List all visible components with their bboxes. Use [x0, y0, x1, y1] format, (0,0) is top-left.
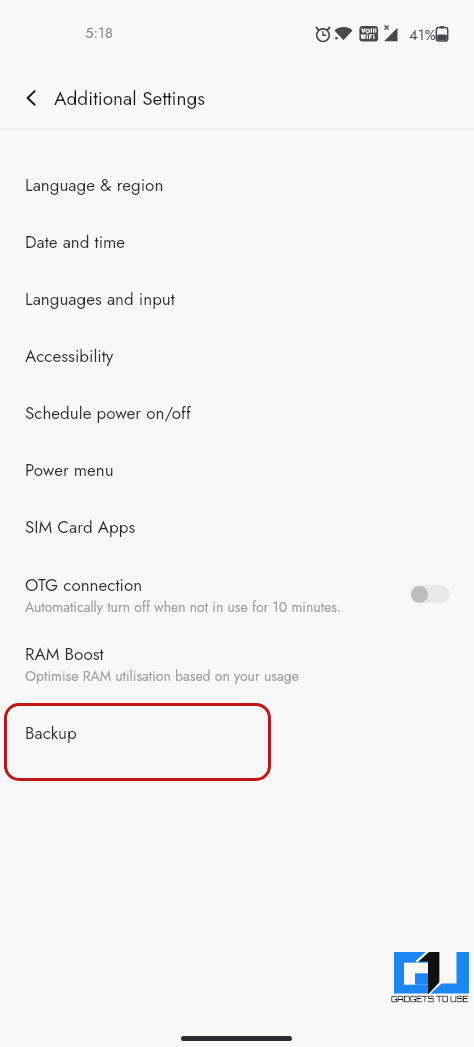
- staticText: Backup: [25, 721, 77, 746]
- button[interactable]: Back: [15, 81, 49, 115]
- button[interactable]: Backup: [4, 703, 271, 781]
- staticText: Additional Settings: [54, 85, 205, 112]
- button[interactable]: Power menu: [0, 431, 474, 488]
- button[interactable]: OTG connection toggle: [410, 585, 450, 603]
- staticText: Accessibility: [25, 344, 114, 369]
- staticText: GADGETS TO USE: [391, 994, 469, 1004]
- staticText: Power menu: [25, 458, 114, 483]
- staticText: 41%: [409, 24, 436, 46]
- staticText: Optimise RAM utilisation based on your u…: [25, 666, 299, 686]
- staticText: OTG connection: [25, 573, 143, 598]
- staticText: Languages and input: [25, 287, 175, 312]
- staticText: 5:18: [85, 22, 113, 44]
- staticText: Automatically turn off when not in use f…: [25, 597, 342, 617]
- staticText: Language & region: [25, 173, 164, 198]
- button[interactable]: Language & region: [0, 146, 474, 203]
- staticText: SIM Card Apps: [25, 515, 136, 540]
- staticText: Schedule power on/off: [25, 401, 191, 426]
- button[interactable]: Schedule power on/off: [0, 374, 474, 431]
- button[interactable]: OTG connection: [0, 546, 474, 615]
- button[interactable]: SIM Card Apps: [0, 488, 474, 545]
- button[interactable]: Accessibility: [0, 317, 474, 374]
- button[interactable]: Date and time: [0, 203, 474, 260]
- button[interactable]: RAM Boost: [0, 615, 474, 684]
- staticText: Date and time: [25, 230, 126, 255]
- button[interactable]: Home: [181, 1036, 292, 1041]
- button[interactable]: Languages and input: [0, 260, 474, 317]
- staticText: RAM Boost: [25, 642, 104, 667]
